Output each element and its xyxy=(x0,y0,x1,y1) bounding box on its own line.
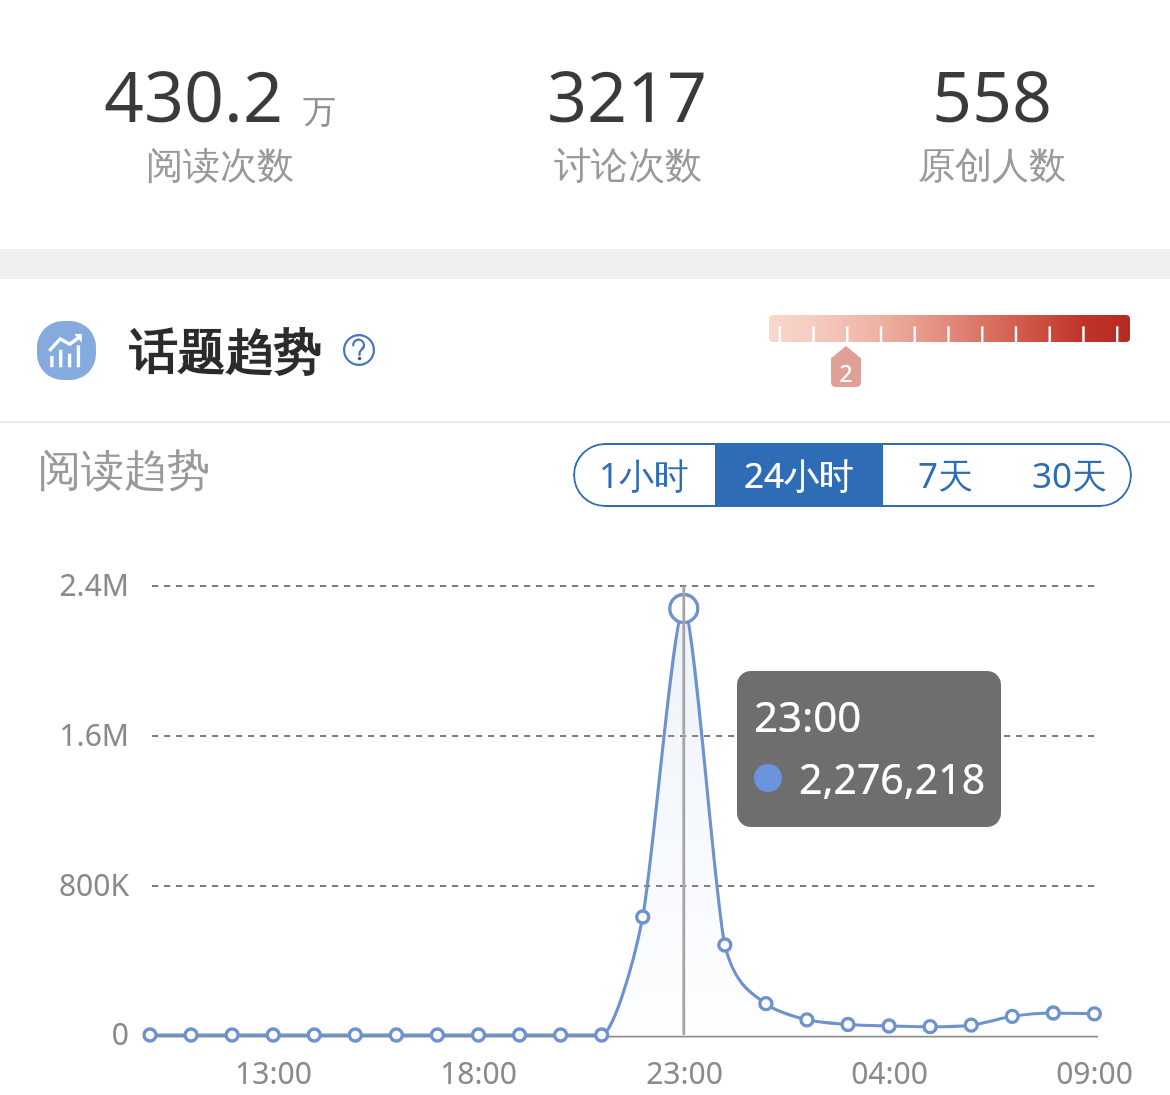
staticText: 7天 xyxy=(918,451,974,499)
staticText: 558 xyxy=(932,47,1053,142)
button[interactable]: 话题趋势 xyxy=(129,323,321,383)
button[interactable]: 430.2 xyxy=(104,47,336,189)
staticText: 800K xyxy=(58,864,129,905)
button[interactable]: 帮助 xyxy=(343,334,375,366)
staticText: 04:00 xyxy=(851,1052,928,1093)
button[interactable]: 1小时 xyxy=(573,443,715,507)
staticText: 09:00 xyxy=(1056,1052,1133,1093)
button[interactable]: 热度 xyxy=(769,315,1130,387)
staticText: 2.4M xyxy=(59,564,129,605)
staticText: 阅读趋势 xyxy=(38,444,210,498)
button[interactable]: 24小时 xyxy=(715,443,883,507)
staticText: 3217 xyxy=(547,47,708,142)
staticText: 30天 xyxy=(1032,451,1108,499)
button[interactable]: 558 xyxy=(918,47,1066,189)
staticText: 2,276,218 xyxy=(799,750,986,806)
staticText: 阅读次数 xyxy=(146,142,294,189)
staticText: 23:00 xyxy=(754,687,862,744)
staticText: 2 xyxy=(831,357,861,388)
staticText: 24小时 xyxy=(744,451,855,499)
staticText: 1小时 xyxy=(599,451,690,499)
staticText: 430.2 xyxy=(104,47,283,142)
button[interactable]: 23:00 xyxy=(737,671,1001,827)
staticText: 0 xyxy=(111,1013,129,1054)
button[interactable]: 3217 xyxy=(547,47,708,189)
staticText: 讨论次数 xyxy=(554,142,702,189)
button[interactable]: 30天 xyxy=(1008,443,1132,507)
staticText: 原创人数 xyxy=(918,142,1066,189)
button[interactable]: 趋势 xyxy=(37,321,96,380)
staticText: 1.6M xyxy=(59,714,129,755)
button[interactable]: 7天 xyxy=(883,443,1008,507)
staticText: 万 xyxy=(303,91,336,133)
staticText: 13:00 xyxy=(235,1052,312,1093)
staticText: 18:00 xyxy=(440,1052,517,1093)
staticText: 23:00 xyxy=(646,1052,723,1093)
